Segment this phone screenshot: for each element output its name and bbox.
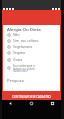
- staticText: lactose ou glúten: [13, 67, 35, 71]
- button[interactable]: Pesquisa: [7, 78, 24, 83]
- staticText: CONTINUAR SEM CADASTRO: [12, 95, 51, 99]
- button[interactable]: Sim, sou celíaco: [7, 38, 57, 43]
- staticText: Outra: [13, 57, 23, 62]
- button[interactable]: Outra: [7, 57, 57, 62]
- button[interactable]: Back: [8, 101, 13, 106]
- button[interactable]: Sou intolerante a: [7, 64, 57, 74]
- staticText: Saiba mais: [13, 69, 27, 73]
- staticText: Vegetariano: [13, 44, 33, 49]
- staticText: Não: [13, 32, 20, 37]
- staticText: Pesquisa: [7, 78, 24, 83]
- button[interactable]: Vegetariano: [7, 44, 57, 49]
- staticText: Sou intolerante a: [13, 64, 35, 68]
- button[interactable]: CONTINUAR SEM CADASTRO: [2, 95, 61, 99]
- button[interactable]: Vegano: [7, 50, 57, 55]
- staticText: Vegano: [13, 50, 26, 55]
- staticText: Alergia Ou Dieta: [7, 26, 41, 32]
- button[interactable]: Não: [7, 32, 57, 37]
- staticText: Sim, sou celíaco: [13, 38, 39, 43]
- button[interactable]: Recents: [50, 101, 55, 106]
- button[interactable]: Home: [29, 101, 34, 106]
